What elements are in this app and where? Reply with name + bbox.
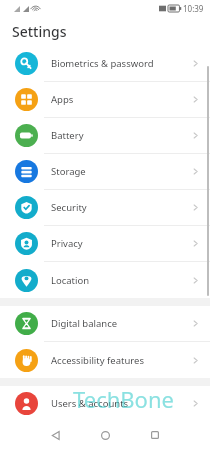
staticText: Battery (51, 129, 191, 142)
button[interactable]: Privacy (0, 226, 210, 262)
staticText: 10:39 (183, 3, 204, 14)
button[interactable]: Storage (0, 154, 210, 190)
staticText: Biometrics & password (51, 57, 191, 70)
staticText: Storage (51, 165, 191, 178)
button[interactable]: Biometrics & password (0, 46, 210, 82)
button[interactable]: Apps (0, 82, 210, 118)
staticText: Privacy (51, 237, 191, 250)
button[interactable]: Security (0, 190, 210, 226)
button[interactable]: Location (0, 262, 210, 298)
button[interactable]: Users & accounts (0, 386, 210, 420)
staticText: Digital balance (51, 317, 191, 330)
staticText: Location (51, 274, 191, 287)
staticText: Users & accounts (51, 397, 191, 410)
button[interactable]: Back (42, 422, 68, 448)
button[interactable]: Battery (0, 118, 210, 154)
staticText: Apps (51, 93, 191, 106)
button[interactable]: Accessibility features (0, 342, 210, 378)
staticText: TechBone (73, 384, 174, 414)
staticText: Security (51, 201, 191, 214)
button[interactable]: Digital balance (0, 306, 210, 342)
staticText: Settings (12, 22, 67, 41)
button[interactable]: Home (92, 422, 118, 448)
button[interactable]: Recents (142, 422, 168, 448)
staticText: Accessibility features (51, 354, 191, 367)
